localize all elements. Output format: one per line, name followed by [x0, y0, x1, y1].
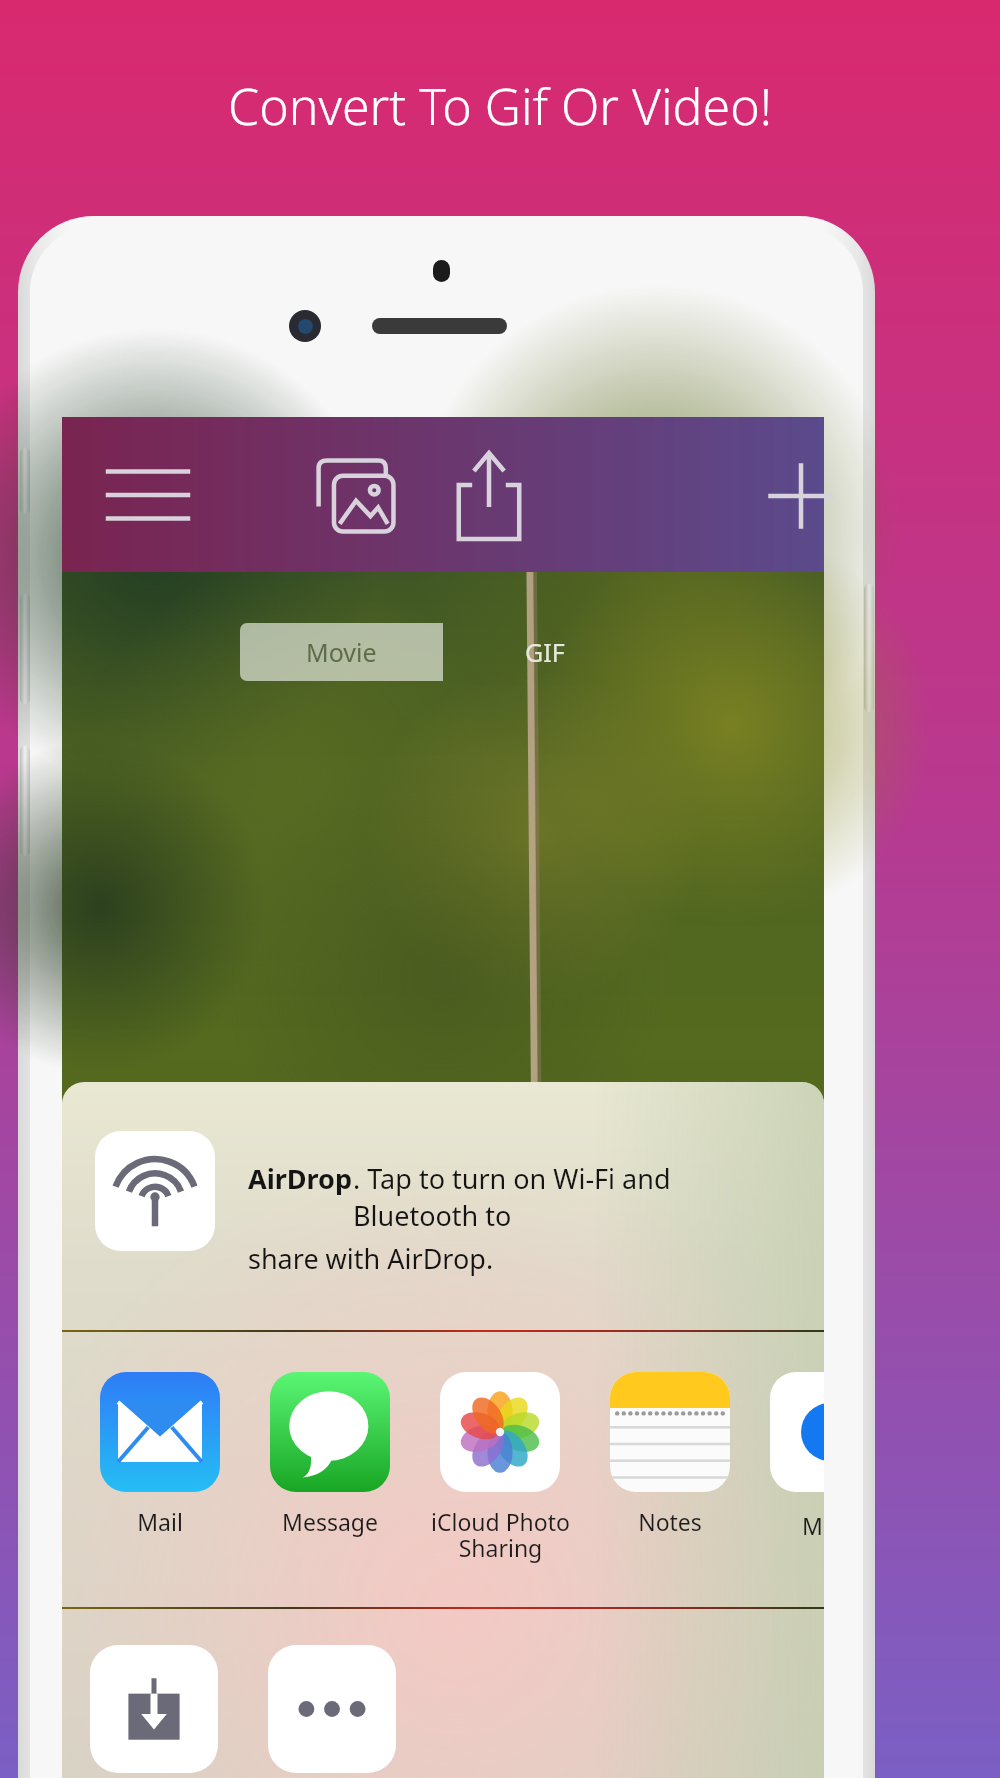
button[interactable]: Photo library [309, 447, 405, 543]
staticText: Movie [306, 635, 377, 669]
staticText: GIF [525, 635, 565, 669]
staticText: Notes [638, 1506, 702, 1537]
button[interactable]: iCloud Photo Sharing [430, 1372, 570, 1564]
button[interactable]: Notes [600, 1372, 740, 1537]
button[interactable]: AirDrop [62, 1082, 824, 1330]
button[interactable]: Message [260, 1372, 400, 1537]
button[interactable]: Menu [100, 453, 196, 537]
staticText: share with AirDrop. [248, 1240, 494, 1277]
staticText: AirDrop [248, 1160, 353, 1197]
button[interactable]: Share [447, 445, 531, 545]
other: AirDrop [95, 1131, 215, 1251]
staticText: Message [282, 1506, 378, 1537]
button[interactable]: GIF [443, 623, 646, 681]
button[interactable]: More apps [770, 1372, 824, 1492]
button[interactable]: Save image [90, 1645, 218, 1773]
button[interactable]: Movie [240, 623, 443, 681]
staticText: . Tap to turn on Wi-Fi and Bluetooth to [353, 1160, 768, 1234]
staticText: M [802, 1510, 823, 1541]
staticText: iCloud Photo Sharing [431, 1506, 570, 1564]
staticText: Convert To Gif Or Video! [228, 72, 772, 140]
button[interactable]: More [268, 1645, 396, 1773]
button[interactable]: Add [762, 457, 840, 535]
button[interactable]: Mail [90, 1372, 230, 1537]
staticText: Mail [137, 1506, 183, 1537]
